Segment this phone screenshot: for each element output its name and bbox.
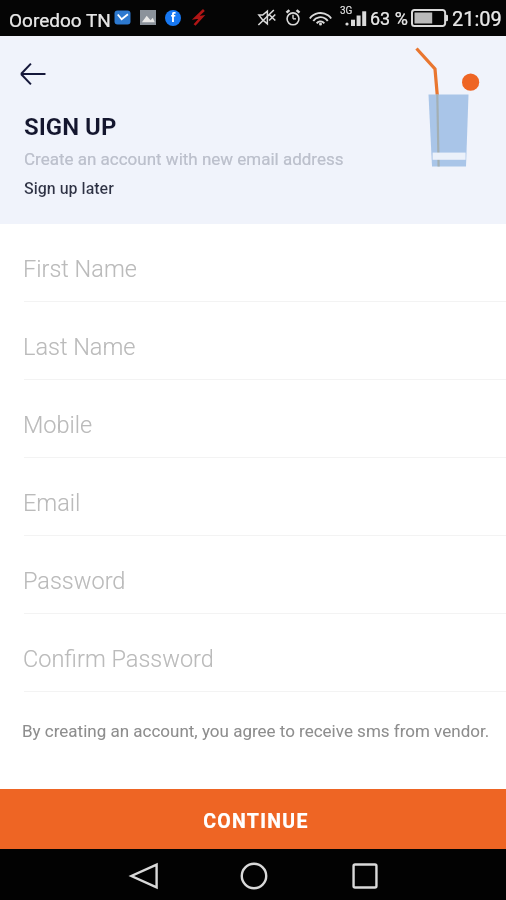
staticText: CONTINUE — [203, 810, 309, 833]
button[interactable]: Email — [0, 458, 506, 536]
button[interactable]: Home — [223, 849, 285, 900]
button[interactable]: Back — [113, 849, 175, 900]
staticText: Password — [23, 567, 126, 595]
staticText: Confirm Password — [23, 645, 214, 673]
button[interactable]: Confirm Password — [0, 614, 506, 692]
staticText: Last Name — [23, 333, 136, 361]
button[interactable]: Mobile — [0, 380, 506, 458]
staticText: SIGN UP — [24, 113, 117, 141]
button[interactable]: Last Name — [0, 302, 506, 380]
staticText: Email — [23, 489, 81, 517]
staticText: 3G — [340, 5, 353, 17]
button[interactable]: CONTINUE — [0, 789, 506, 849]
staticText: Sign up later — [24, 179, 114, 198]
button[interactable]: Sign up later — [24, 179, 114, 198]
button[interactable]: First Name — [0, 224, 506, 302]
staticText: First Name — [23, 255, 137, 283]
button[interactable]: Recent apps — [334, 849, 396, 900]
staticText: Create an account with new email address — [24, 149, 344, 169]
staticText: f — [171, 11, 176, 25]
button[interactable]: Password — [0, 536, 506, 614]
button[interactable]: Back — [11, 52, 54, 95]
staticText: 21:09 — [452, 7, 502, 30]
staticText: By creating an account, you agree to rec… — [22, 721, 490, 741]
staticText: 63 % — [370, 8, 408, 29]
staticText: Ooredoo TN — [9, 9, 111, 31]
staticText: Mobile — [23, 411, 93, 439]
